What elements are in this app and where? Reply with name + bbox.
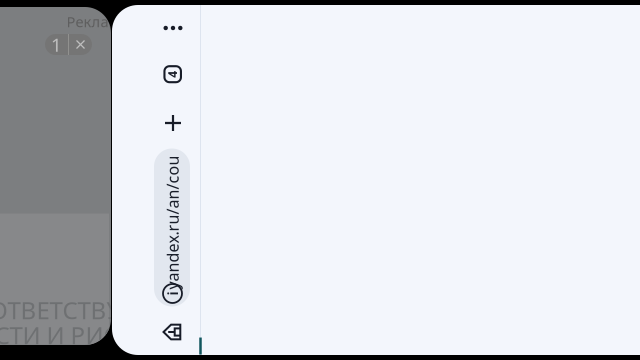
- staticText: yandex.ru/an/cou: [105, 212, 239, 233]
- staticText: Реклама: [66, 12, 127, 31]
- button[interactable]: More options: [151, 13, 195, 43]
- button[interactable]: Back: [150, 317, 194, 347]
- button[interactable]: New tab: [151, 108, 195, 138]
- staticText: i: [170, 284, 174, 303]
- staticText: НОСТИ И РИСКИ: [0, 319, 151, 351]
- button[interactable]: Tabs: [151, 59, 195, 89]
- staticText: СООТВЕТСТВУЮ-: [0, 294, 153, 326]
- staticText: 4: [169, 66, 176, 82]
- button[interactable]: Close ad: [45, 34, 92, 55]
- button[interactable]: yandex.ru/an/cou: [154, 148, 190, 306]
- staticText: 1: [51, 32, 62, 57]
